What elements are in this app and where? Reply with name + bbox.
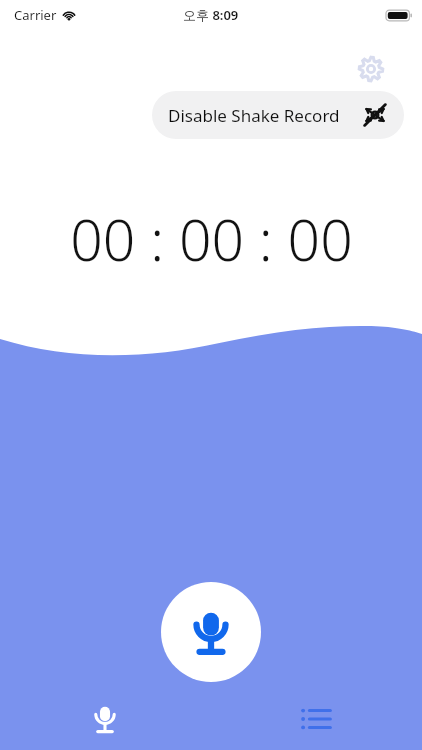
button[interactable]: Settings — [352, 50, 390, 88]
button[interactable]: Disable Shake Record — [152, 91, 404, 139]
staticText: Carrier — [14, 6, 57, 24]
staticText: 오후 8:09 — [183, 6, 239, 24]
button[interactable]: Record — [161, 582, 261, 682]
staticText: 00 : 00 : 00 — [70, 200, 353, 278]
button[interactable]: Recordings list — [289, 692, 343, 746]
button[interactable]: Recorder — [78, 692, 132, 746]
staticText: Disable Shake Record — [168, 104, 340, 127]
